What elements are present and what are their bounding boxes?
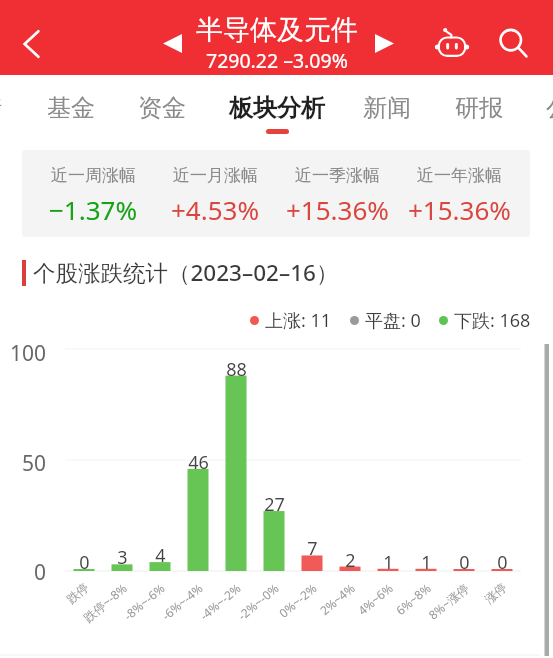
staticText: 近一周涨幅	[51, 165, 136, 186]
staticText: 7	[307, 536, 318, 561]
staticText: 下跌: 168	[454, 308, 531, 332]
button[interactable]: 公告	[526, 75, 553, 138]
staticText: 3	[117, 545, 128, 570]
staticText: 4	[155, 543, 166, 568]
button[interactable]: 近一周涨幅	[22, 150, 530, 237]
staticText: 近一季涨幅	[295, 165, 380, 186]
staticText: 公告	[546, 93, 553, 123]
staticText: 0	[459, 550, 470, 575]
staticText: 新闻	[363, 93, 411, 123]
button[interactable]: Back	[8, 20, 56, 68]
staticText: 行情	[0, 93, 2, 123]
staticText: 0	[33, 558, 46, 587]
staticText: 0	[497, 550, 508, 575]
button[interactable]: 研报	[435, 75, 523, 138]
staticText: +15.36%	[408, 192, 511, 227]
staticText: 近一年涨幅	[417, 165, 502, 186]
staticText: 研报	[455, 93, 503, 123]
staticText: 基金	[47, 93, 95, 123]
staticText: 50	[21, 449, 46, 478]
staticText: 88	[226, 357, 247, 382]
staticText: 近一月涨幅	[173, 165, 258, 186]
staticText: 上涨: 11	[265, 308, 332, 332]
button[interactable]: AI assistant	[429, 20, 475, 66]
staticText: +15.36%	[286, 192, 389, 227]
staticText: 0	[79, 550, 90, 575]
button[interactable]: Search	[490, 20, 536, 66]
staticText: 46	[188, 450, 209, 475]
staticText: 1	[383, 550, 394, 575]
staticText: 个股涨跌统计（2023–02–16）	[33, 257, 339, 288]
button[interactable]: 板块分析	[209, 75, 345, 138]
staticText: 7290.22 –3.09%	[206, 47, 348, 74]
staticText: +4.53%	[171, 192, 260, 227]
staticText: 半导体及元件	[196, 13, 358, 47]
staticText: 27	[264, 492, 285, 517]
staticText: 100	[9, 339, 46, 368]
button[interactable]: Previous sector	[152, 23, 192, 63]
staticText: 板块分析	[229, 93, 325, 123]
button[interactable]: 资金	[118, 75, 206, 138]
staticText: 1	[421, 550, 432, 575]
button[interactable]: 基金	[27, 75, 115, 138]
button[interactable]: 新闻	[343, 75, 431, 138]
button[interactable]: 行情	[0, 75, 22, 138]
staticText: 平盘: 0	[365, 308, 421, 332]
button[interactable]: Next sector	[364, 23, 404, 63]
staticText: 资金	[138, 93, 186, 123]
staticText: 2	[345, 548, 356, 573]
staticText: −1.37%	[49, 192, 138, 227]
